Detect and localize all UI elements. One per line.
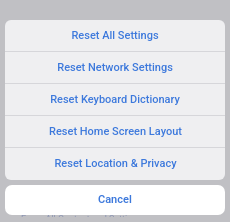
staticText: Reset Keyboard Dictionary bbox=[50, 93, 180, 106]
button[interactable]: Reset Keyboard Dictionary bbox=[5, 84, 225, 116]
staticText: Reset Network Settings bbox=[57, 61, 173, 74]
staticText: Reset Home Screen Layout bbox=[49, 125, 182, 138]
staticText: Reset All Settings bbox=[71, 29, 159, 42]
button[interactable]: Reset Network Settings bbox=[5, 52, 225, 84]
button[interactable]: Cancel bbox=[5, 185, 225, 215]
button[interactable]: Reset Location & Privacy bbox=[5, 148, 225, 180]
staticText: Erase All Content and Settings bbox=[21, 215, 142, 217]
button[interactable]: Reset All Settings bbox=[5, 20, 225, 52]
button[interactable]: Reset Home Screen Layout bbox=[5, 116, 225, 148]
staticText: Cancel bbox=[98, 193, 132, 206]
staticText: Reset Location & Privacy bbox=[54, 157, 177, 170]
